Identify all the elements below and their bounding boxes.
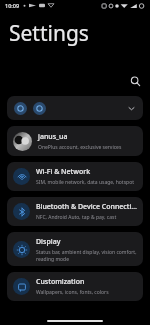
staticText: Wallpapers, icons, fonts, colors: [36, 289, 109, 296]
button[interactable]: Search: [126, 72, 144, 90]
button[interactable]: Wi-Fi & Network: [7, 162, 143, 191]
staticText: janus_ua: [38, 132, 68, 142]
staticText: SIM, mobile network, data usage, hotspot: [36, 179, 134, 186]
button[interactable]: Quick toggle: [33, 102, 46, 115]
staticText: OnePlus account, exclusive services: [38, 144, 122, 151]
button[interactable]: Display: [7, 232, 143, 266]
staticText: Settings: [9, 19, 89, 48]
staticText: NFC, Android Auto, tap & pay, cast: [36, 214, 117, 221]
button[interactable]: janus_ua: [7, 126, 143, 156]
button[interactable]: Bluetooth & Device Connection: [7, 197, 143, 226]
button[interactable]: Quick toggle: [14, 102, 27, 115]
staticText: Bluetooth & Device Connection: [36, 202, 138, 212]
staticText: Customization: [36, 277, 85, 287]
staticText: Wi-Fi & Network: [36, 167, 91, 177]
other: Expand: [127, 104, 136, 113]
staticText: 10:09: [5, 2, 20, 9]
button[interactable]: Quick toggle: [7, 96, 143, 120]
staticText: Status bar, ambient display, vision comf…: [36, 249, 138, 262]
staticText: Display: [36, 237, 61, 247]
button[interactable]: Customization: [7, 272, 143, 301]
